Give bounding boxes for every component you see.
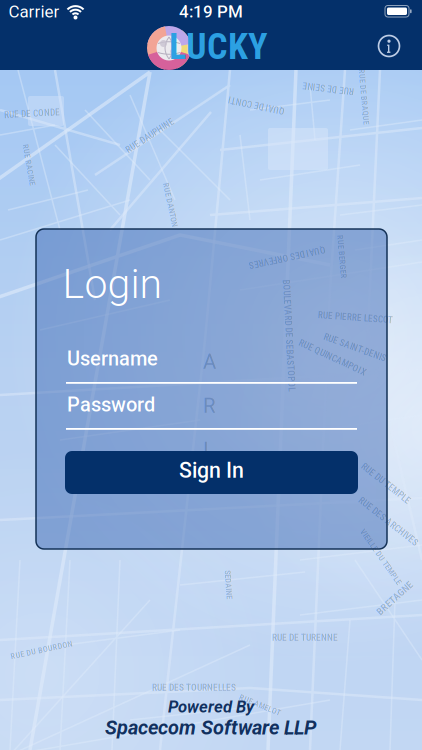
staticText: RUE DES TOURNELLES [152,682,236,693]
button[interactable]: Username [66,347,357,387]
staticText: RUE DU BOURDON [10,645,73,655]
staticText: RUE DE SEINE [302,83,354,94]
staticText: Powered By [168,697,254,716]
staticText: Password [67,393,155,416]
staticText: RUE DANTON [148,200,193,210]
staticText: RUE DE TURENNE [272,632,338,643]
staticText: R [203,394,215,418]
staticText: RUE DAUPHINE [122,130,178,141]
button[interactable]: Password [66,393,357,433]
staticText: Carrier [8,2,59,22]
staticText: 4:19 PM [179,2,243,22]
staticText: SEDAINE [214,580,243,590]
staticText: RUE QUINCAMPOIX [296,352,369,363]
staticText: BOULEVARD DE SEBASTOPOL [233,330,345,341]
staticText: VIEILLE DU TEMPLE [348,552,414,562]
staticText: Username [67,347,158,370]
staticText: RUE PIERRE LESCOT [318,312,393,323]
staticText: Sign In [179,458,244,483]
staticText: RUE DU TEMPLE [356,478,416,489]
staticText: RUE BERGER [320,252,364,262]
button[interactable]: Info [374,31,404,61]
staticText: Spacecom Software LLP [105,716,317,739]
staticText: RUE DES ARCHIVES [352,516,422,527]
staticText: RUE SAINT-DENIS [322,342,388,353]
staticText: I [203,438,209,462]
staticText: RUE DE BRAQUE [336,92,392,102]
staticText: RUE AMELOT [238,700,282,710]
button[interactable]: Sign In [65,451,358,494]
staticText: A [203,350,216,374]
staticText: QUAI DES ORFEVRES [248,252,326,263]
staticText: QUAI DE CONTI [228,100,285,111]
staticText: RUE DE CONDE [4,108,60,119]
staticText: BRETAGNE [372,592,417,604]
staticText: LUCKY [169,25,268,68]
staticText: Login [62,260,162,308]
staticText: RUE RACINE [8,160,50,170]
